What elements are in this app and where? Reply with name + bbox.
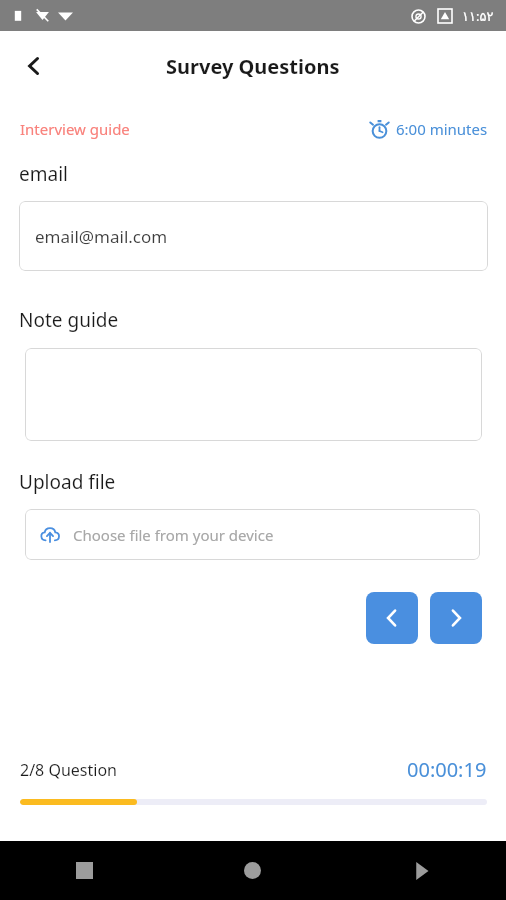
staticText: email [19, 161, 68, 187]
staticText: ۱۱:۵۲ [462, 7, 494, 25]
button[interactable] [25, 348, 482, 441]
button[interactable]: Next question [430, 592, 482, 644]
button[interactable]: Back [10, 42, 58, 90]
button[interactable]: Recent apps [337, 841, 506, 900]
staticText: Choose file from your device [73, 525, 274, 545]
button[interactable]: email@mail.com [19, 201, 488, 271]
button[interactable]: Home [168, 841, 337, 900]
staticText: 00:00:19 [407, 756, 487, 783]
staticText: Upload file [19, 469, 116, 495]
staticText: 2/8 Question [20, 759, 117, 781]
button[interactable]: Interview guide [20, 119, 130, 139]
staticText: Survey Questions [166, 53, 340, 80]
button[interactable]: Choose file from your device [25, 509, 480, 560]
staticText: 6:00 minutes [396, 119, 488, 139]
staticText: Note guide [19, 307, 119, 333]
staticText: email@mail.com [35, 225, 168, 248]
button[interactable]: Previous question [366, 592, 418, 644]
button[interactable]: Back [0, 841, 168, 900]
